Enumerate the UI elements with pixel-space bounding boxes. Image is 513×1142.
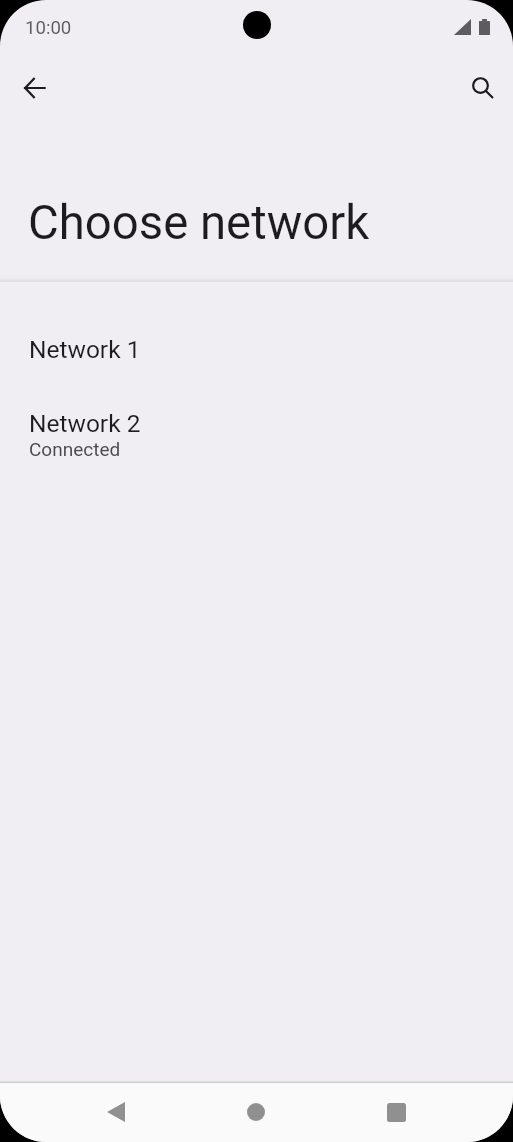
staticText: Connected [29,438,121,460]
staticText: Network 1 [29,335,141,364]
button[interactable]: Navigate up [10,64,58,112]
button[interactable]: Recent apps [366,1084,426,1142]
staticText: Network 2 [29,409,141,438]
button[interactable]: Network 2 [0,393,513,467]
button[interactable]: Home [226,1084,286,1142]
button[interactable]: Network 1 [0,319,513,393]
staticText: 10:00 [25,17,72,39]
staticText: Choose network [28,195,370,250]
button[interactable]: Back [86,1084,146,1142]
button[interactable]: Search [459,65,507,113]
